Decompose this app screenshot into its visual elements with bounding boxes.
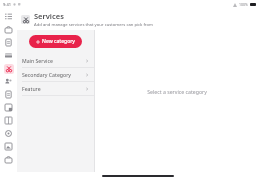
button[interactable]: Navigation item 9 (2, 127, 15, 140)
button[interactable]: Services (2, 62, 15, 75)
button[interactable]: Navigation item 3 (2, 49, 15, 62)
button[interactable]: New category (29, 35, 82, 48)
button[interactable]: Secondary Category (17, 68, 94, 81)
button[interactable]: Navigation item 11 (2, 153, 15, 166)
staticText: Feature (22, 85, 85, 92)
button[interactable]: Navigation item 1 (2, 23, 15, 36)
staticText: Add and manage services that your custom… (34, 22, 153, 28)
staticText: 100% (239, 2, 248, 7)
staticText: New category (42, 38, 75, 45)
button[interactable]: Main Service (17, 54, 94, 67)
button[interactable]: Navigation item 8 (2, 114, 15, 127)
button[interactable]: Navigation item 10 (2, 140, 15, 153)
button[interactable]: Navigation item 6 (2, 88, 15, 101)
button[interactable]: Navigation item 2 (2, 36, 15, 49)
staticText: Select a service category (147, 88, 207, 95)
staticText: Main Service (22, 57, 85, 64)
button[interactable]: Navigation item 0 (2, 10, 15, 23)
button[interactable]: Navigation item 5 (2, 75, 15, 88)
button[interactable]: Feature (17, 82, 94, 95)
staticText: 9:41 (3, 2, 11, 7)
staticText: Services (34, 11, 64, 21)
staticText: Secondary Category (22, 71, 85, 78)
button[interactable]: Navigation item 7 (2, 101, 15, 114)
